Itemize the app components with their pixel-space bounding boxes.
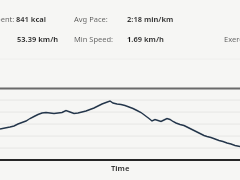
staticText: Time	[111, 163, 130, 173]
button[interactable]: Avg Pace:	[74, 14, 108, 24]
button[interactable]: Min Speed:	[74, 34, 114, 44]
staticText: Min Speed:	[74, 34, 114, 44]
button[interactable]: Spent:	[0, 14, 15, 24]
staticText: Exercise	[224, 34, 240, 44]
staticText: 53.39 km/h	[17, 34, 59, 44]
staticText: 1.69 km/h	[127, 34, 164, 44]
staticText: Avg Pace:	[74, 14, 108, 24]
staticText: Spent:	[0, 14, 15, 24]
button[interactable]: 53.39 km/h	[17, 34, 59, 44]
button[interactable]: Exercise	[224, 34, 240, 44]
button[interactable]: 1.69 km/h	[127, 34, 164, 44]
button[interactable]: 2:18 min/km	[127, 14, 174, 24]
button[interactable]: 841 kcal	[16, 14, 47, 24]
staticText: 841 kcal	[16, 14, 47, 24]
staticText: 2:18 min/km	[127, 14, 174, 24]
